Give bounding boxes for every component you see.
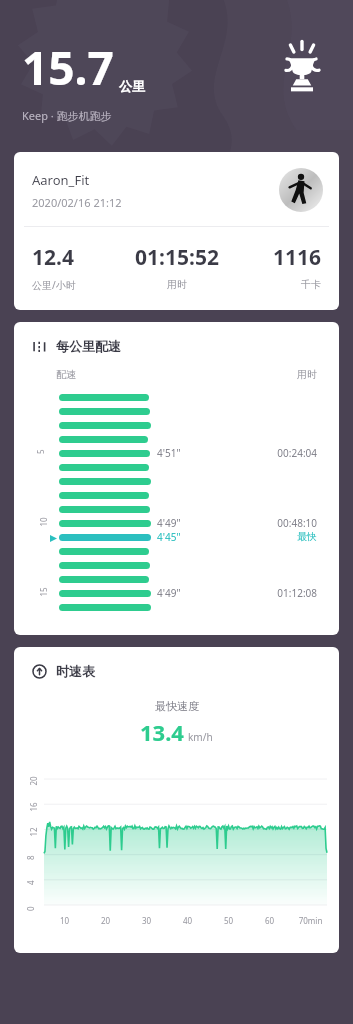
staticText: 20 — [27, 775, 38, 785]
staticText: 12.4 — [32, 243, 129, 272]
staticText: Keep · 跑步机跑步 — [22, 108, 112, 123]
staticText: 用时 — [297, 368, 317, 381]
staticText: 千卡 — [225, 278, 321, 291]
staticText: 最快 — [14, 530, 317, 543]
button[interactable]: Aaron_Fit — [14, 152, 339, 310]
staticText: 2020/02/16 21:12 — [32, 195, 122, 210]
staticText: 4'51" — [157, 446, 181, 460]
staticText: 8 — [25, 855, 36, 860]
staticText: 每公里配速 — [56, 338, 121, 354]
staticText: 13.4 — [140, 717, 184, 747]
staticText: 时速表 — [56, 663, 95, 679]
staticText: 15 — [37, 586, 48, 596]
staticText: 00:24:04 — [14, 446, 317, 460]
staticText: 4'49" — [157, 516, 181, 530]
staticText: 20 — [85, 915, 126, 926]
staticText: 0 — [25, 906, 36, 911]
staticText: km/h — [188, 730, 213, 744]
staticText: 30 — [126, 915, 167, 926]
staticText: 40 — [167, 915, 208, 926]
button[interactable]: 时速表 — [14, 647, 339, 953]
staticText: 16 — [27, 801, 38, 811]
staticText: 12 — [27, 826, 38, 836]
staticText: 用时 — [129, 278, 225, 291]
staticText: 公里/小时 — [32, 278, 129, 292]
staticText: 4 — [25, 880, 36, 885]
staticText: 10 — [37, 516, 48, 526]
staticText: 公里 — [119, 78, 145, 94]
staticText: 50 — [208, 915, 249, 926]
staticText: 4'45" — [157, 530, 181, 544]
staticText: 01:12:08 — [14, 586, 317, 600]
staticText: Aaron_Fit — [32, 171, 90, 189]
staticText: 10 — [44, 915, 85, 926]
button[interactable]: Trophy achievement — [273, 38, 331, 96]
staticText: 01:15:52 — [129, 243, 225, 272]
staticText: 1116 — [225, 243, 321, 272]
staticText: 4'49" — [157, 586, 181, 600]
staticText: 70min — [290, 915, 331, 926]
staticText: 5 — [35, 449, 46, 454]
staticText: 60 — [249, 915, 290, 926]
staticText: 最快速度 — [155, 699, 199, 713]
staticText: 配速 — [56, 368, 76, 381]
staticText: 00:48:10 — [14, 516, 317, 530]
staticText: 15.7 — [22, 36, 114, 99]
button[interactable]: 每公里配速 — [14, 322, 339, 635]
